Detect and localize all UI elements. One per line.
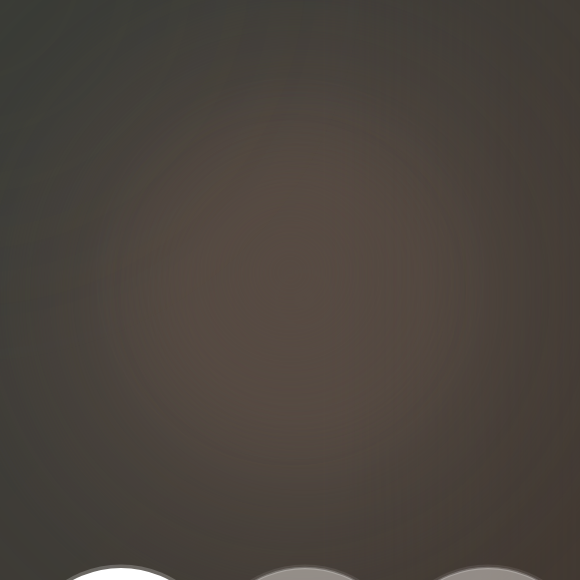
button[interactable]: Select white background (18, 567, 222, 579)
button[interactable]: Select dark background (385, 567, 580, 579)
button[interactable]: Select grey background (203, 567, 407, 579)
